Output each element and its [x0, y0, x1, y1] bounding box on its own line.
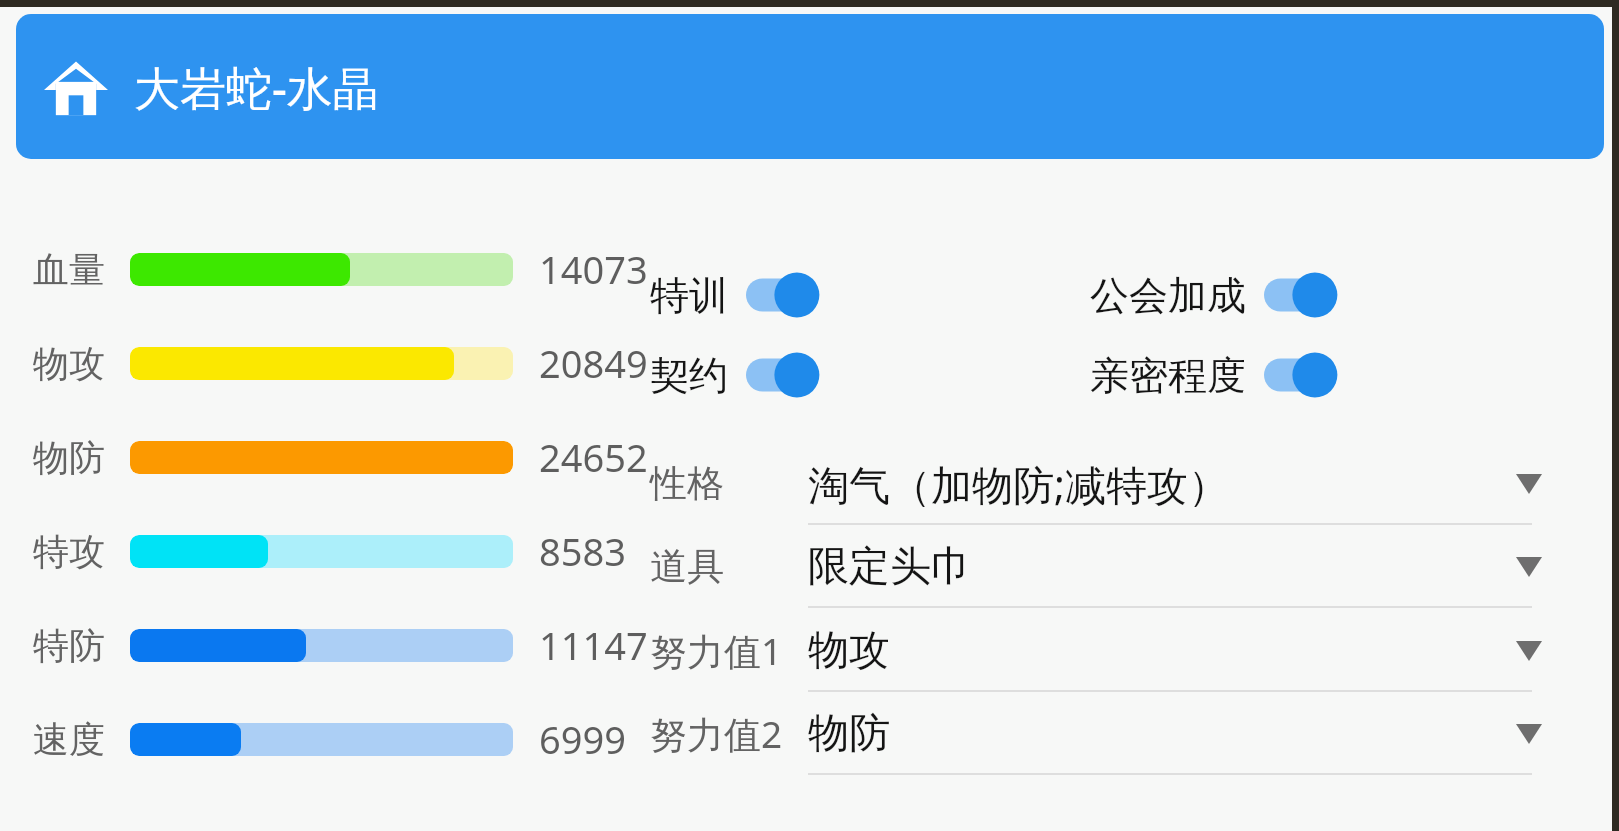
staticText: 血量: [33, 247, 105, 292]
staticText: 8583: [539, 525, 626, 577]
button[interactable]: 亲密程度 toggle: [1264, 350, 1350, 400]
other: Expand 道具: [1516, 557, 1542, 577]
button[interactable]: 契约 toggle: [746, 350, 832, 400]
staticText: 道具: [650, 543, 724, 590]
staticText: 性格: [650, 460, 724, 507]
staticText: 14073: [539, 243, 648, 295]
staticText: 6999: [539, 713, 626, 765]
button[interactable]: 特攻: [0, 504, 626, 598]
staticText: 大岩蛇-水晶: [134, 56, 379, 119]
button[interactable]: 公会加成: [1090, 270, 1350, 320]
staticText: 特防: [33, 623, 105, 668]
button[interactable]: 物防: [0, 410, 648, 504]
other: Expand 努力值2: [1516, 724, 1542, 744]
staticText: 物攻: [808, 625, 890, 677]
staticText: 特训: [650, 271, 728, 320]
staticText: 11147: [539, 619, 648, 671]
staticText: 20849: [539, 337, 648, 389]
staticText: 物防: [33, 435, 105, 480]
staticText: 淘气（加物防;减特攻）: [808, 456, 1229, 512]
staticText: 速度: [33, 717, 105, 762]
button[interactable]: 公会加成 toggle: [1264, 270, 1350, 320]
button[interactable]: 道具: [0, 525, 1612, 608]
other: Expand 性格: [1516, 474, 1542, 494]
other: Expand 努力值1: [1516, 641, 1542, 661]
button[interactable]: 性格: [0, 442, 1612, 525]
button[interactable]: 努力值1: [0, 609, 1612, 692]
staticText: 限定头巾: [808, 541, 972, 593]
button[interactable]: 物攻: [0, 316, 648, 410]
button[interactable]: 特防: [0, 598, 648, 692]
staticText: 公会加成: [1090, 271, 1246, 320]
staticText: 努力值2: [650, 708, 783, 759]
button[interactable]: 特训 toggle: [746, 270, 832, 320]
staticText: 24652: [539, 431, 648, 483]
staticText: 物攻: [33, 341, 105, 386]
button[interactable]: 努力值2: [0, 692, 1612, 775]
button[interactable]: 血量: [0, 222, 648, 316]
staticText: 物防: [808, 708, 890, 760]
staticText: 契约: [650, 351, 728, 400]
staticText: 亲密程度: [1090, 351, 1246, 400]
button[interactable]: 契约: [650, 350, 832, 400]
button[interactable]: 亲密程度: [1090, 350, 1350, 400]
button[interactable]: 速度: [0, 692, 626, 786]
button[interactable]: Home: [16, 14, 1604, 159]
button[interactable]: 特训: [650, 270, 832, 320]
staticText: 努力值1: [650, 625, 783, 676]
staticText: 特攻: [33, 529, 105, 574]
button[interactable]: Home: [44, 55, 108, 119]
